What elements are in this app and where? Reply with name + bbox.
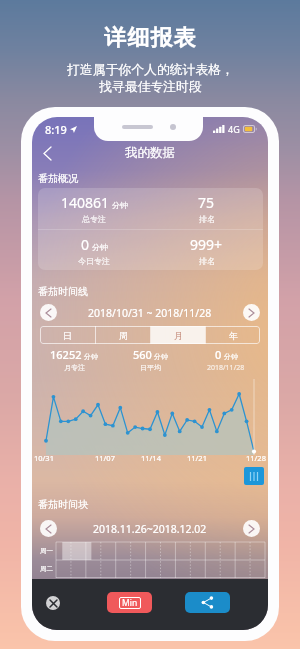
staticText: 999+ [190, 235, 223, 254]
staticText: 番茄概况 [38, 172, 78, 185]
staticText: 日平均 [140, 363, 161, 372]
staticText: 打造属于你个人的统计表格， [67, 62, 234, 78]
staticText: 2018/11/28 [207, 363, 245, 373]
staticText: 排名 [199, 256, 215, 266]
staticText: 番茄时间线 [38, 285, 88, 298]
staticText: 11/07 [95, 453, 115, 463]
staticText: 分钟 [84, 352, 98, 361]
staticText: 月专注 [64, 363, 85, 372]
staticText: 8:19 [45, 122, 67, 136]
staticText: 分钟 [112, 200, 128, 210]
button[interactable]: Previous period [40, 304, 57, 321]
button[interactable]: 140861 [38, 188, 150, 229]
staticText: 75 [198, 193, 215, 212]
button[interactable]: 999+ [150, 230, 263, 270]
button[interactable]: Previous period [40, 520, 57, 537]
staticText: 分钟 [154, 352, 168, 361]
staticText: 10/31 [34, 453, 54, 463]
staticText: 排名 [199, 214, 215, 224]
button[interactable]: 周 [96, 326, 150, 344]
button[interactable]: 日 [40, 326, 95, 344]
staticText: 今日专注 [78, 256, 110, 266]
staticText: 11/28 [246, 453, 266, 463]
staticText: 日 [63, 330, 72, 341]
staticText: 16252 [50, 347, 82, 362]
button[interactable]: Close [46, 596, 60, 610]
staticText: 4G [228, 123, 240, 135]
button[interactable]: 0 [38, 230, 150, 270]
staticText: 周 [119, 330, 128, 341]
staticText: 分钟 [224, 352, 238, 361]
button[interactable]: Next period [243, 520, 260, 537]
button[interactable]: Share [185, 592, 230, 613]
staticText: 2018/10/31 ~ 2018/11/28 [88, 306, 212, 320]
button[interactable]: 75 [150, 188, 263, 229]
staticText: 月 [174, 330, 183, 341]
staticText: 11/14 [141, 453, 161, 463]
button[interactable]: 年 [206, 326, 260, 344]
staticText: 140861 [61, 193, 110, 212]
staticText: 我的数据 [125, 145, 175, 161]
staticText: 番茄时间块 [38, 498, 88, 511]
button[interactable]: 月 [151, 326, 205, 344]
staticText: 找寻最佳专注时段 [99, 79, 202, 95]
staticText: 0 [81, 235, 90, 254]
staticText: 详细报表 [104, 24, 197, 52]
button[interactable]: Back [32, 145, 62, 161]
staticText: 0 [215, 347, 222, 362]
staticText: 周二 [40, 565, 53, 573]
button[interactable]: Min [107, 592, 152, 613]
staticText: 年 [229, 330, 238, 341]
staticText: 2018.11.26~2018.12.02 [93, 522, 207, 536]
button[interactable]: Chart scroll handle [244, 467, 264, 485]
staticText: 560 [133, 347, 152, 362]
staticText: 周一 [40, 547, 53, 555]
button[interactable]: Next period [243, 304, 260, 321]
staticText: 11/21 [187, 453, 207, 463]
staticText: Min [122, 597, 138, 609]
staticText: 总专注 [82, 214, 106, 224]
staticText: 分钟 [92, 242, 108, 252]
